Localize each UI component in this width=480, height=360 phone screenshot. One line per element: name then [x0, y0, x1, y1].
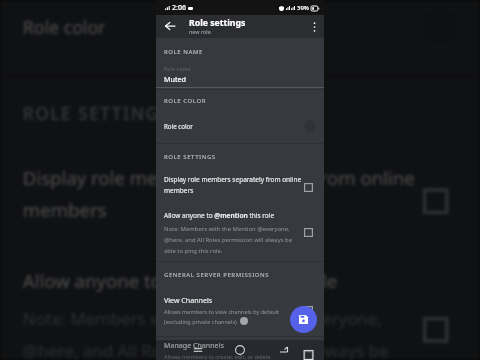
staticText: Role settings	[189, 17, 246, 29]
staticText: new role	[189, 28, 211, 35]
button[interactable]: Back	[159, 15, 181, 37]
staticText: Allows members to view channels by defau…	[164, 308, 299, 325]
staticText: Role color	[164, 122, 193, 130]
staticText: GENERAL SERVER PERMISSIONS	[164, 271, 270, 279]
button[interactable]: More options	[304, 17, 324, 37]
staticText: Display role members separately from onl…	[164, 175, 303, 195]
staticText: Role name	[164, 66, 191, 73]
staticText: View Channels	[164, 295, 213, 305]
button[interactable]: Role color	[156, 113, 324, 139]
staticText: Allow anyone to @mention this role	[23, 268, 340, 294]
staticText: Manage Channels	[164, 340, 224, 350]
staticText: ROLE COLOR	[164, 97, 207, 105]
staticText: Allows members to create, edit, or delet…	[164, 353, 271, 360]
button[interactable]: Allow anyone to @mention this role	[156, 211, 324, 255]
staticText: ROLE NAME	[164, 48, 203, 56]
staticText: Allow anyone to @mention this role	[164, 211, 275, 220]
staticText: ROLE SETTINGS	[23, 103, 171, 125]
staticText: ROLE SETTINGS	[164, 153, 216, 161]
staticText: Display role members separately from onl…	[23, 165, 420, 223]
staticText: 2:06	[172, 3, 186, 13]
button[interactable]: Manage Channels	[156, 340, 324, 360]
staticText: Note: Members with the Mention @everyone…	[164, 225, 303, 255]
button[interactable]: Role color	[0, 0, 480, 63]
staticText: Role color	[23, 14, 106, 37]
button[interactable]: Save	[290, 306, 317, 333]
button[interactable]: Allow anyone to @mention this role	[0, 268, 480, 360]
staticText: Note: Members with the Mention @everyone…	[23, 308, 420, 360]
button[interactable]: Display role members separately from onl…	[0, 165, 480, 223]
button[interactable]: Display role members separately from onl…	[156, 175, 324, 195]
staticText: Muted	[164, 74, 187, 84]
staticText: 39%	[297, 4, 309, 12]
button[interactable]: View Channels	[156, 295, 324, 325]
